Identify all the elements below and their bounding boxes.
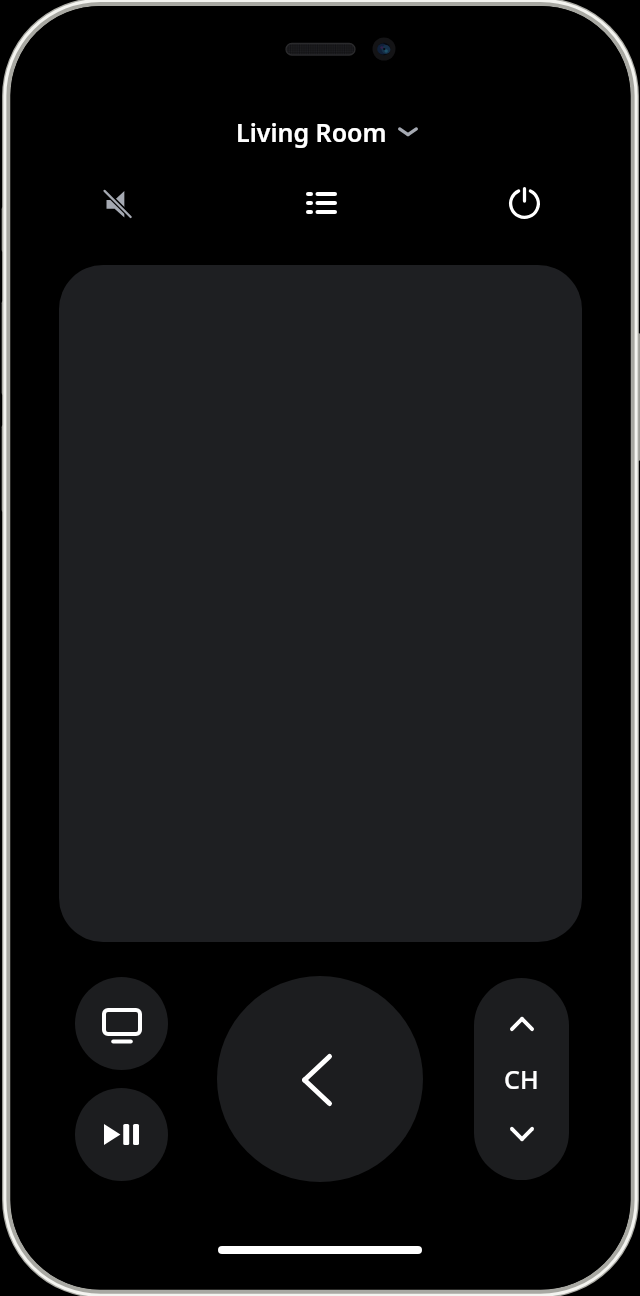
button[interactable]: Channel up [474,978,569,1070]
button[interactable]: Play pause [75,1088,168,1181]
staticText: Living Room [236,115,387,149]
button[interactable]: Input source [75,977,168,1070]
button[interactable]: Power [498,177,550,229]
button[interactable]: Mute [91,177,143,229]
button[interactable]: Channel list [295,177,347,229]
button[interactable]: Back [217,976,423,1182]
button[interactable]: Living Room, change room [232,113,423,151]
staticText: CH [504,1062,539,1096]
button[interactable]: Channel [474,1050,569,1108]
button[interactable]: Channel down [474,1088,569,1180]
